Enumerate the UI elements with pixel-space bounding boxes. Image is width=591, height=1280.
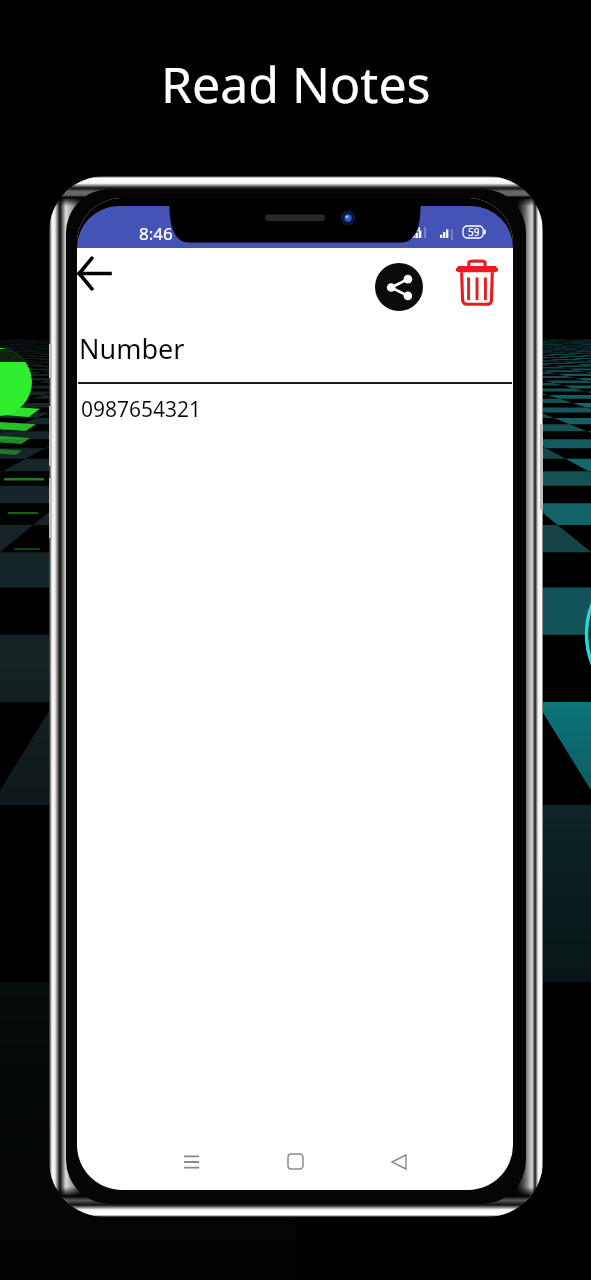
staticText: Number <box>79 330 185 367</box>
button[interactable]: Delete <box>451 252 503 310</box>
button[interactable]: Recent apps <box>161 1133 221 1190</box>
button[interactable]: Back <box>77 251 116 295</box>
button[interactable]: Back <box>369 1133 429 1190</box>
staticText: 59 <box>468 225 480 237</box>
button[interactable]: Home <box>265 1133 325 1190</box>
staticText: 0987654321 <box>81 395 202 424</box>
staticText: 8:46 <box>139 222 173 245</box>
button[interactable]: Share <box>375 263 423 311</box>
staticText: Read Notes <box>161 50 431 118</box>
